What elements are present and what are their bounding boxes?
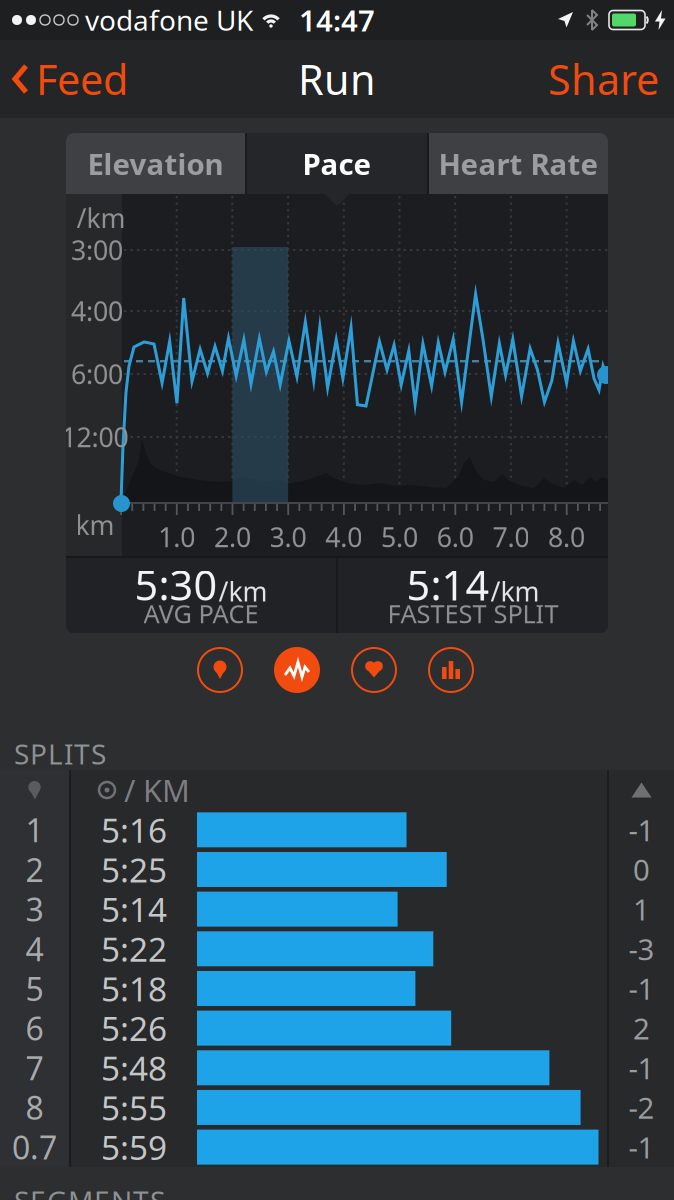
staticText: 5:14: [406, 557, 489, 612]
staticText: 8: [25, 1086, 43, 1129]
staticText: 2: [25, 848, 43, 891]
button[interactable]: Share: [548, 52, 674, 106]
staticText: /km: [218, 573, 267, 609]
button[interactable]: Heart Rate: [429, 133, 608, 194]
staticText: Share: [548, 52, 659, 106]
staticText: 12:00: [61, 419, 128, 455]
staticText: -3: [628, 929, 654, 968]
staticText: FASTEST SPLIT: [387, 597, 558, 630]
staticText: 3:00: [71, 232, 123, 268]
staticText: 5:25: [101, 847, 167, 892]
staticText: Heart Rate: [438, 144, 598, 183]
staticText: 5:26: [101, 1006, 167, 1050]
staticText: /km: [76, 200, 125, 236]
staticText: km: [75, 507, 114, 543]
staticText: Feed: [36, 52, 128, 106]
staticText: 3: [25, 888, 43, 930]
staticText: 5:48: [101, 1046, 167, 1090]
staticText: 5:55: [101, 1085, 167, 1130]
button[interactable]: Splits: [428, 647, 474, 693]
staticText: -1: [628, 1048, 654, 1087]
button[interactable]: Map: [197, 647, 243, 693]
staticText: 14:47: [299, 0, 375, 39]
staticText: 4: [25, 928, 43, 970]
button[interactable]: Elevation: [66, 133, 245, 194]
staticText: SPLITS: [14, 735, 106, 772]
staticText: -1: [628, 969, 654, 1008]
staticText: 7: [25, 1046, 43, 1089]
staticText: -2: [628, 1088, 654, 1127]
staticText: AVG PACE: [143, 597, 258, 630]
staticText: vodafone UK: [85, 1, 253, 39]
staticText: -1: [628, 1128, 654, 1167]
staticText: 5:30: [134, 557, 217, 612]
staticText: 6.0: [437, 519, 474, 555]
staticText: 2: [633, 1009, 650, 1048]
button[interactable]: Feed: [0, 52, 128, 106]
staticText: 5:22: [101, 927, 167, 971]
staticText: 1.0: [158, 519, 195, 555]
staticText: 5:16: [101, 808, 167, 852]
staticText: -1: [628, 810, 654, 849]
staticText: Elevation: [87, 144, 223, 183]
staticText: 4.0: [325, 519, 362, 555]
staticText: Run: [298, 52, 376, 106]
staticText: 6: [25, 1007, 43, 1049]
staticText: 0.7: [12, 1126, 57, 1168]
staticText: 5:59: [101, 1125, 167, 1169]
staticText: 5: [25, 967, 43, 1010]
staticText: 3.0: [270, 519, 307, 555]
staticText: 5:14: [101, 887, 167, 931]
button[interactable]: Pace: [274, 647, 320, 693]
staticText: / KM: [124, 770, 190, 810]
staticText: 4:00: [71, 293, 123, 329]
staticText: Pace: [302, 144, 371, 183]
staticText: 5:18: [101, 966, 167, 1011]
staticText: 5.0: [381, 519, 418, 555]
staticText: 1: [633, 890, 650, 929]
staticText: 8.0: [548, 519, 585, 555]
staticText: 6:00: [71, 356, 123, 392]
staticText: SEGMENTS: [14, 1182, 165, 1200]
button[interactable]: Heart rate: [351, 647, 397, 693]
staticText: 0: [633, 850, 650, 889]
staticText: 7.0: [492, 519, 529, 555]
staticText: /km: [490, 573, 539, 609]
button[interactable]: Pace: [247, 133, 427, 194]
staticText: 1: [25, 809, 43, 851]
staticText: 2.0: [214, 519, 251, 555]
